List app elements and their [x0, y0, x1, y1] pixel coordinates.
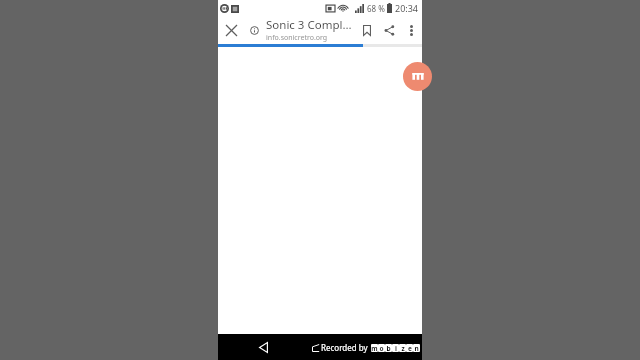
staticText: b: [386, 344, 391, 352]
button[interactable]: Back: [252, 336, 274, 358]
staticText: z: [401, 344, 405, 352]
staticText: 68 %: [367, 3, 385, 14]
button[interactable]: Bookmark: [356, 19, 378, 41]
staticText: e: [408, 344, 412, 352]
button[interactable]: Sonic 3 Complete...: [266, 17, 354, 43]
staticText: i: [395, 344, 397, 352]
button[interactable]: Share: [378, 19, 400, 41]
staticText: m: [371, 344, 378, 352]
staticText: o: [379, 344, 384, 352]
button[interactable]: Site information: [244, 20, 264, 40]
staticText: Sonic 3 Complete...: [266, 17, 354, 33]
staticText: Recorded by: [321, 342, 368, 353]
staticText: n: [414, 344, 419, 352]
staticText: info.sonicretro.org: [266, 33, 328, 43]
button[interactable]: More options: [400, 19, 422, 41]
staticText: 20:34: [395, 2, 419, 14]
button[interactable]: Close: [218, 17, 244, 43]
